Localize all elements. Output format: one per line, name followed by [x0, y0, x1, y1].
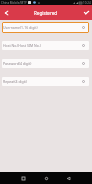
button[interactable]: Back [0, 5, 15, 20]
button[interactable]: Username(1-16 digit) [2, 22, 89, 33]
staticText: Username(1-16 digit) [3, 25, 38, 30]
button[interactable]: Password(4 digit) [2, 59, 89, 68]
staticText: China Mobile/MTP [1, 1, 27, 5]
button[interactable]: Recent apps [18, 173, 29, 184]
button[interactable]: Confirm [77, 5, 92, 20]
staticText: Host No.(Host SIM No.) [3, 43, 41, 48]
staticText: Registered [34, 10, 58, 16]
staticText: Repeat(4 digit) [3, 79, 27, 84]
button[interactable]: Back [63, 173, 74, 184]
button[interactable]: Home [41, 173, 52, 184]
button[interactable]: Host No.(Host SIM No.) [2, 41, 89, 50]
button[interactable]: Repeat(4 digit) [2, 77, 89, 86]
staticText: Password(4 digit) [3, 61, 32, 66]
staticText: 10:24 [83, 1, 91, 5]
